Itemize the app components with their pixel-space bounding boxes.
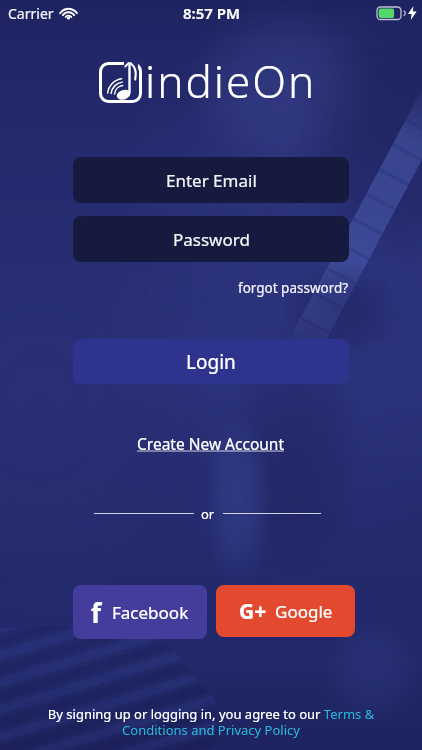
staticText: Google	[275, 600, 333, 623]
staticText: Create New Account	[137, 433, 285, 454]
staticText: or	[201, 505, 215, 523]
staticText: 8:57 PM	[183, 3, 240, 23]
staticText: indieOn	[145, 51, 317, 111]
staticText: Facebook	[112, 601, 189, 624]
staticText: Enter Email	[166, 169, 257, 192]
staticText: By signing up or logging in, you agree t…	[40, 705, 382, 739]
staticText: G+	[239, 597, 267, 626]
button[interactable]: Login	[73, 339, 349, 384]
button[interactable]: Enter Email	[73, 157, 349, 203]
button[interactable]: By signing up or logging in, you agree t…	[40, 705, 382, 739]
staticText: f	[91, 595, 102, 630]
button[interactable]: f	[73, 585, 207, 639]
button[interactable]: Password	[73, 216, 349, 262]
staticText: Password	[173, 228, 250, 251]
button[interactable]: forgot password?	[238, 279, 349, 297]
staticText: Carrier	[8, 4, 54, 23]
staticText: Login	[186, 349, 236, 375]
staticText: forgot password?	[238, 279, 349, 297]
button[interactable]: G+	[216, 585, 355, 637]
button[interactable]: Create New Account	[137, 433, 285, 454]
